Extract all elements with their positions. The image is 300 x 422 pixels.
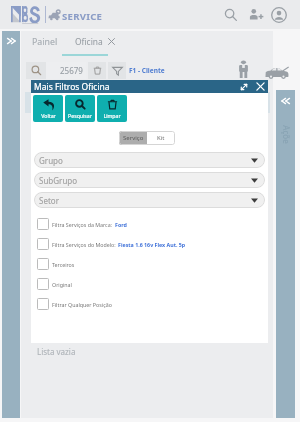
- button[interactable]: Filtra Serviços do Modelo:: [37, 234, 268, 254]
- staticText: Painel: [32, 36, 58, 48]
- staticText: Ford: [115, 221, 127, 228]
- button[interactable]: Voltar: [33, 95, 63, 122]
- staticText: Fiesta 1.6 16v Flex Aut. 5p: [118, 241, 186, 248]
- staticText: Serviço: [123, 134, 144, 142]
- button[interactable]: Original: [37, 274, 268, 294]
- staticText: Filtra Serviços da Marca:: [52, 221, 113, 228]
- button[interactable]: Grupo: [34, 152, 265, 168]
- staticText: Oficina: [75, 36, 103, 47]
- button[interactable]: Filtrar: [108, 62, 126, 79]
- staticText: 25679: [60, 65, 83, 76]
- staticText: Voltar: [41, 112, 56, 119]
- staticText: Grupo: [39, 155, 63, 166]
- staticText: Filtrar Qualquer Posição: [52, 301, 112, 308]
- button[interactable]: Setor: [34, 192, 265, 208]
- staticText: Limpar: [103, 112, 121, 119]
- button[interactable]: Painel: [32, 36, 58, 48]
- button[interactable]: Oficina: [75, 36, 116, 47]
- button[interactable]: Limpar: [97, 95, 127, 122]
- staticText: SubGrupo: [39, 175, 78, 186]
- staticText: Filtra Serviços do Modelo:: [52, 241, 116, 248]
- button[interactable]: Pesquisar: [223, 7, 239, 23]
- staticText: Original: [52, 281, 72, 288]
- button[interactable]: Cliente: [234, 58, 253, 79]
- button[interactable]: Buscar: [26, 62, 46, 79]
- button[interactable]: Conta: [270, 6, 287, 23]
- button[interactable]: SubGrupo: [34, 172, 265, 188]
- button[interactable]: Fechar: [252, 80, 268, 93]
- staticText: F1 - Cliente: [129, 66, 165, 75]
- staticText: Ações: [279, 125, 292, 144]
- staticText: Lista vazia: [37, 346, 76, 357]
- button[interactable]: Filtrar Qualquer Posição: [37, 294, 268, 314]
- button[interactable]: Adicionar usuário: [247, 6, 264, 23]
- button[interactable]: Excluir: [88, 62, 106, 79]
- staticText: Kit: [157, 134, 165, 142]
- button[interactable]: Kit: [147, 131, 175, 145]
- staticText: Pesquisar: [68, 112, 92, 119]
- button[interactable]: Filtra Serviços da Marca:: [37, 214, 268, 234]
- staticText: Mais Filtros Oficina: [34, 81, 110, 93]
- button[interactable]: Pesquisar: [65, 95, 95, 122]
- staticText: Terceiros: [52, 261, 75, 268]
- button[interactable]: Serviço: [119, 131, 147, 145]
- button[interactable]: Terceiros: [37, 254, 268, 274]
- staticText: SERVICE: [62, 10, 103, 23]
- staticText: Setor: [39, 195, 59, 206]
- button[interactable]: Veículo: [263, 65, 290, 79]
- button[interactable]: Maximizar: [236, 80, 252, 93]
